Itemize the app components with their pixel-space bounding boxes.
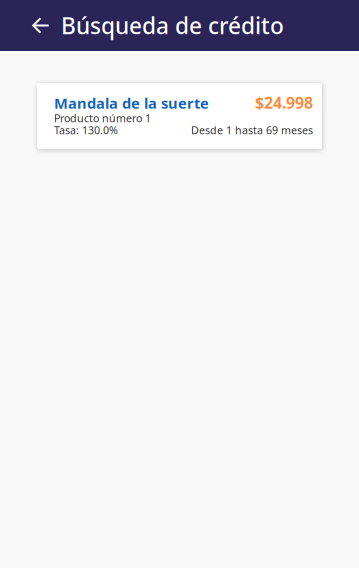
- staticText: Producto número 1: [54, 111, 151, 125]
- button[interactable]: Mandala de la suerte: [37, 83, 322, 149]
- staticText: Mandala de la suerte: [54, 93, 209, 113]
- staticText: Búsqueda de crédito: [61, 10, 284, 40]
- staticText: Desde 1 hasta 69 meses: [191, 123, 313, 137]
- staticText: Tasa: 130.0%: [54, 123, 118, 137]
- button[interactable]: Back: [26, 10, 56, 40]
- staticText: $24.998: [255, 92, 313, 113]
